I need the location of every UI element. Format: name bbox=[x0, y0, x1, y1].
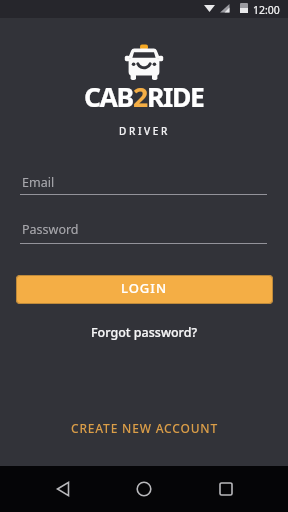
button[interactable] bbox=[48, 474, 78, 504]
staticText: Password bbox=[22, 221, 79, 238]
button[interactable] bbox=[211, 474, 241, 504]
button[interactable]: Forgot password? bbox=[91, 324, 197, 341]
staticText: 12:00 bbox=[253, 3, 280, 17]
staticText: RIDE bbox=[147, 79, 204, 115]
staticText: LOGIN bbox=[121, 279, 168, 297]
button[interactable] bbox=[129, 474, 159, 504]
button[interactable]: LOGIN bbox=[16, 275, 273, 304]
staticText: DRIVER bbox=[119, 124, 170, 138]
staticText: CAB bbox=[84, 79, 133, 115]
button[interactable]: CREATE NEW ACCOUNT bbox=[71, 420, 218, 436]
staticText: Email bbox=[22, 174, 55, 191]
staticText: 2 bbox=[133, 79, 147, 115]
